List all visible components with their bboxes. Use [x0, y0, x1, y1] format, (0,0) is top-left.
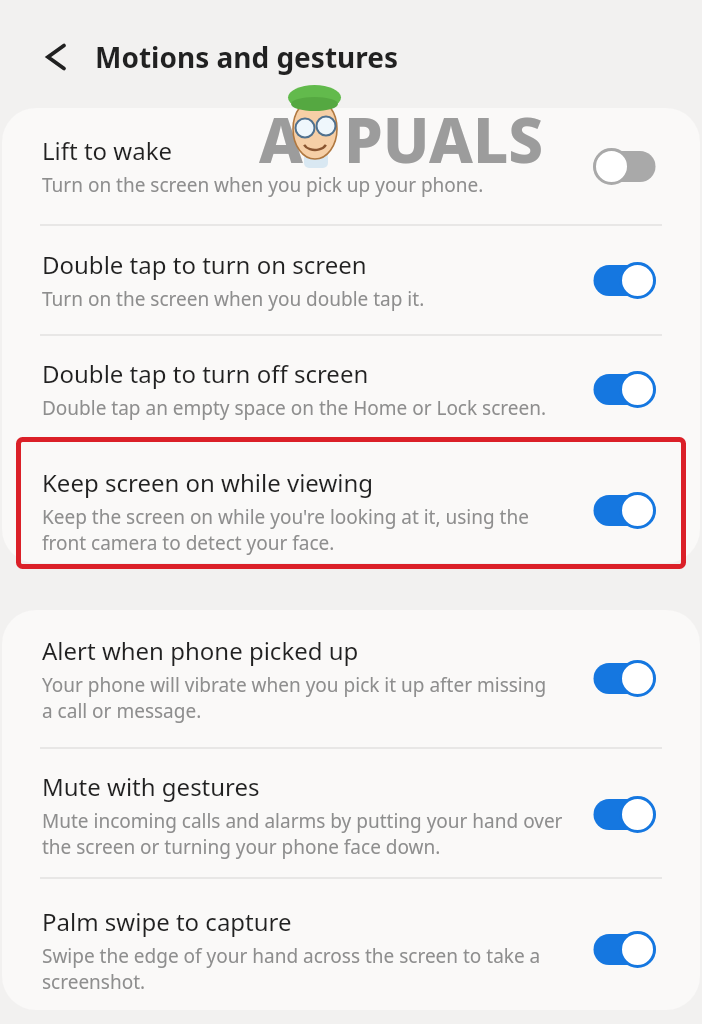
staticText: Keep screen on while viewing [42, 466, 374, 499]
staticText: Double tap to turn off screen [42, 357, 369, 390]
button[interactable]: Lift to wake [2, 108, 700, 224]
staticText: Your phone will vibrate when you pick it… [42, 672, 547, 723]
staticText: Motions and gestures [95, 38, 398, 76]
staticText: PUALS [344, 97, 544, 181]
staticText: Alert when phone picked up [42, 634, 359, 667]
staticText: Swipe the edge of your hand across the s… [42, 943, 541, 994]
staticText: A [259, 97, 303, 181]
staticText: Turn on the screen when you double tap i… [42, 286, 425, 312]
button[interactable]: Keep screen on while viewing [2, 444, 700, 563]
staticText: Double tap an empty space on the Home or… [42, 395, 547, 421]
button[interactable]: Alert when phone picked up [2, 610, 700, 747]
button[interactable]: Mute with gestures [2, 749, 700, 877]
button[interactable] [33, 34, 79, 80]
staticText: Double tap to turn on screen [42, 248, 367, 281]
button[interactable]: Double tap to turn off screen [2, 336, 700, 442]
staticText: Turn on the screen when you pick up your… [42, 172, 484, 198]
button[interactable]: Palm swipe to capture [2, 879, 700, 1010]
staticText: Mute incoming calls and alarms by puttin… [42, 808, 563, 859]
staticText: Mute with gestures [42, 770, 260, 803]
staticText: Keep the screen on while you're looking … [42, 504, 529, 555]
staticText: Palm swipe to capture [42, 905, 292, 938]
staticText: Lift to wake [42, 134, 173, 167]
button[interactable]: Double tap to turn on screen [2, 226, 700, 334]
